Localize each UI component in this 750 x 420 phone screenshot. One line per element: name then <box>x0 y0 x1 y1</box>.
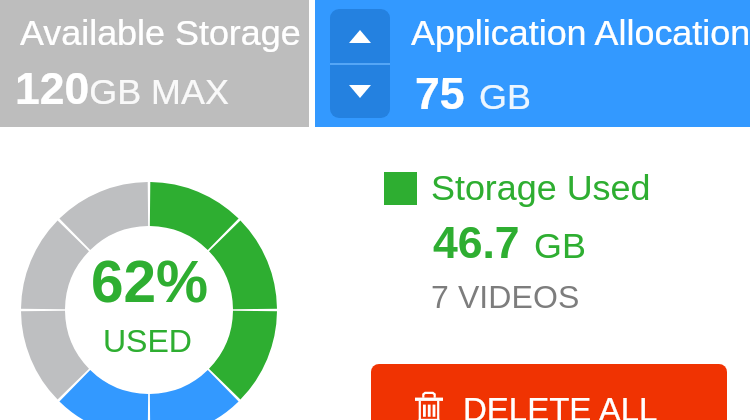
staticText: 62% <box>91 249 209 314</box>
staticText: Storage Used <box>431 168 651 208</box>
staticText: 120GB MAX <box>15 64 229 114</box>
staticText: Available Storage <box>20 13 301 53</box>
staticText: 75 GB <box>415 69 531 119</box>
button[interactable]: Increase allocation <box>330 9 390 63</box>
button[interactable]: DELETE ALL <box>371 364 727 420</box>
staticText: 46.7 GB <box>433 218 586 268</box>
button[interactable]: Available Storage <box>0 0 309 127</box>
staticText: USED <box>103 323 192 359</box>
staticText: Application Allocation <box>411 13 750 53</box>
staticText: DELETE ALL <box>463 391 658 420</box>
staticText: 7 VIDEOS <box>431 279 580 315</box>
button[interactable]: Decrease allocation <box>330 65 390 118</box>
